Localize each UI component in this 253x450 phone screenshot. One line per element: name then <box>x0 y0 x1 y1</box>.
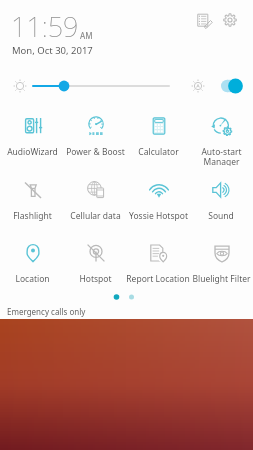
button[interactable]: Report Location <box>124 235 192 293</box>
button[interactable]: Brightness <box>9 75 31 97</box>
staticText: Power & Boost <box>66 146 125 158</box>
button[interactable]: Settings <box>220 10 240 30</box>
button[interactable]: Brightness slider <box>33 76 169 96</box>
button[interactable]: Edit quick settings <box>194 10 214 30</box>
staticText: Hotspot <box>79 273 112 285</box>
button[interactable]: Calculator <box>124 108 192 166</box>
staticText: Bluelight Filter <box>192 273 251 285</box>
button[interactable]: Bluelight Filter <box>187 235 253 293</box>
button[interactable]: Auto brightness toggle <box>218 77 246 95</box>
staticText: 11:59 <box>11 8 79 45</box>
button[interactable]: Flashlight <box>0 172 66 230</box>
staticText: Yossie Hotspot <box>129 210 188 222</box>
button[interactable]: Auto-start Manager <box>187 108 253 166</box>
staticText: AudioWizard <box>7 146 58 158</box>
staticText: Mon, Oct 30, 2017 <box>12 44 93 57</box>
staticText: Emergency calls only <box>7 306 86 317</box>
button[interactable]: Auto brightness <box>187 75 209 97</box>
button[interactable]: Location <box>0 235 66 293</box>
button[interactable]: Power & Boost <box>61 108 129 166</box>
staticText: Cellular data <box>70 210 121 222</box>
staticText: Calculator <box>138 146 179 158</box>
staticText: Location <box>15 273 50 285</box>
staticText: Sound <box>208 210 234 222</box>
button[interactable]: AudioWizard <box>0 108 66 166</box>
button[interactable]: Sound <box>187 172 253 230</box>
staticText: AM <box>80 30 93 41</box>
staticText: Flashlight <box>13 210 52 222</box>
button[interactable]: Hotspot <box>61 235 129 293</box>
button[interactable]: Yossie Hotspot <box>124 172 192 230</box>
staticText: Report Location <box>126 273 190 285</box>
staticText: Auto-start Manager <box>201 146 242 166</box>
button[interactable]: Cellular data <box>61 172 129 230</box>
